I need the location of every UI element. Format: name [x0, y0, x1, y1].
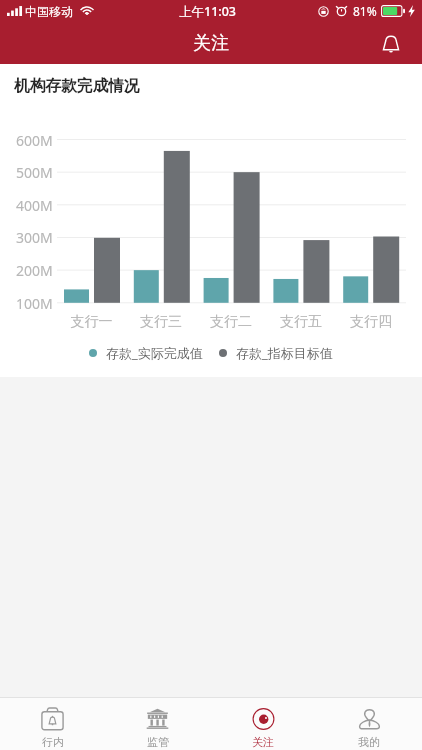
staticText: 400M: [16, 196, 53, 215]
staticText: 支行四: [336, 313, 406, 331]
button[interactable]: Notifications: [375, 27, 407, 59]
staticText: 监管: [147, 735, 169, 749]
staticText: 中国移动: [25, 4, 73, 19]
staticText: 支行五: [266, 313, 336, 331]
staticText: 支行二: [196, 313, 266, 331]
staticText: 存款_实际完成值: [106, 344, 203, 362]
staticText: 支行三: [126, 313, 196, 331]
staticText: 行内: [42, 735, 64, 749]
staticText: 机构存款完成情况: [14, 76, 140, 96]
staticText: 100M: [16, 294, 53, 313]
button[interactable]: 监管: [105, 698, 210, 750]
button[interactable]: 行内: [0, 698, 105, 750]
staticText: 关注: [193, 32, 229, 55]
staticText: 500M: [16, 163, 53, 182]
staticText: 300M: [16, 228, 53, 247]
staticText: 600M: [16, 131, 53, 150]
button[interactable]: 我的: [316, 698, 422, 750]
staticText: 81%: [353, 3, 377, 19]
staticText: 支行一: [57, 313, 126, 331]
staticText: 我的: [358, 735, 380, 749]
button[interactable]: 关注: [210, 698, 316, 750]
staticText: 上午11:03: [179, 3, 237, 20]
staticText: 存款_指标目标值: [236, 344, 333, 362]
staticText: 关注: [252, 735, 274, 749]
staticText: 200M: [16, 261, 53, 280]
